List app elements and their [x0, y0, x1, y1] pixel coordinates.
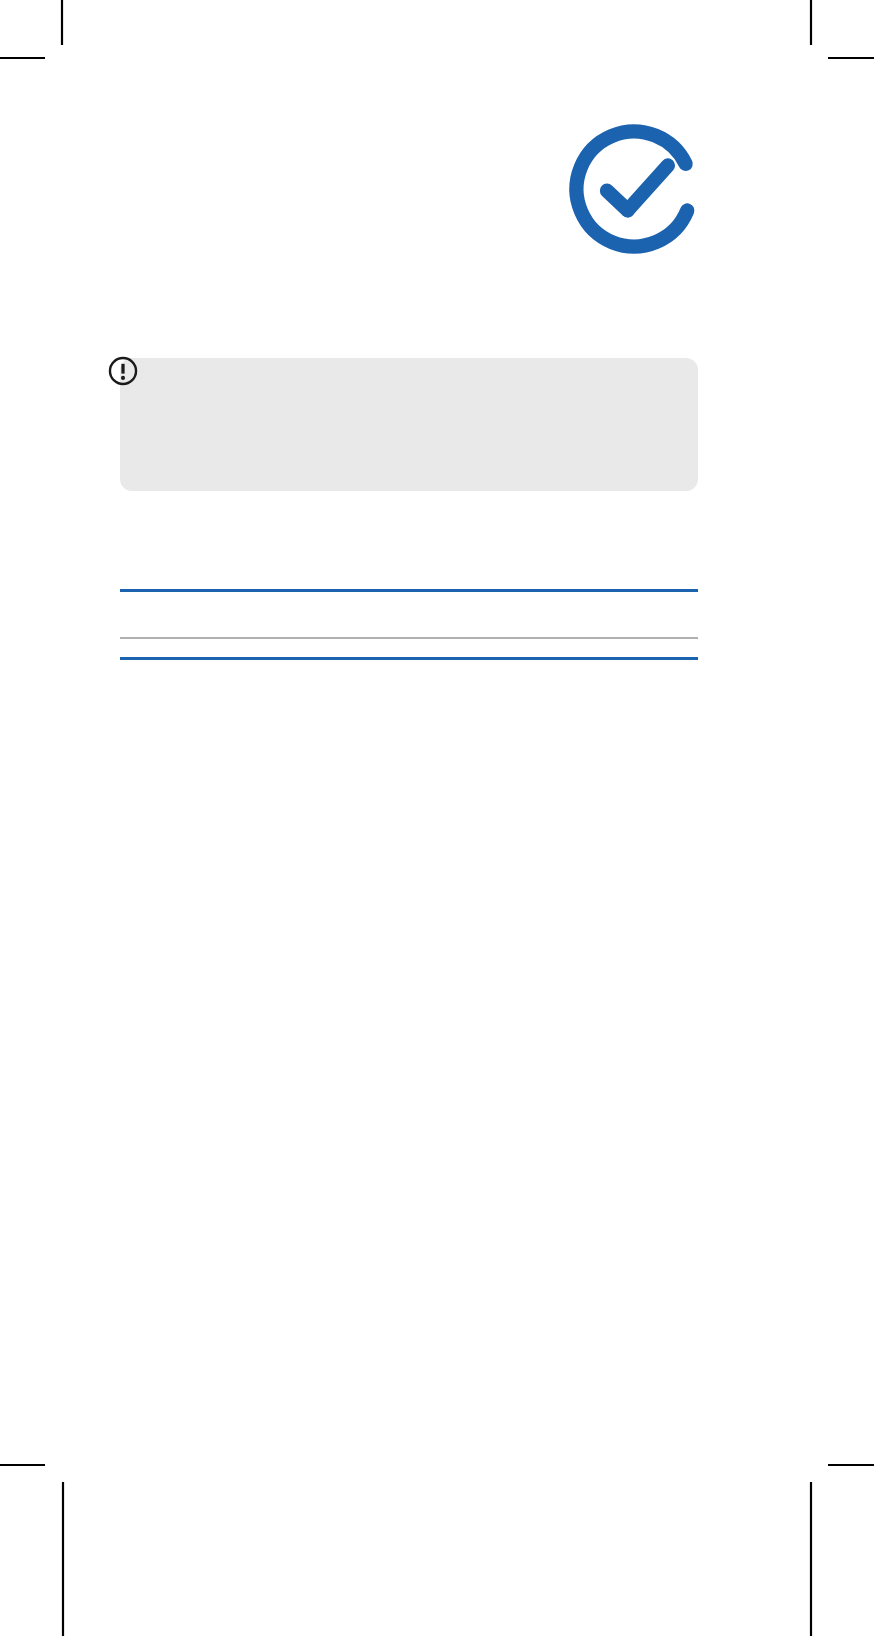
button[interactable]: [120, 358, 698, 491]
button[interactable]: Important information: [107, 355, 139, 387]
button[interactable]: Success: [566, 121, 702, 257]
